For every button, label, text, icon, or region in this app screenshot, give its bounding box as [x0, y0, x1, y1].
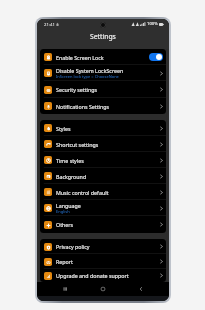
- staticText: Shortcut settings: [56, 141, 99, 148]
- staticText: Disable System LockScreen: [56, 67, 124, 74]
- staticText: English: [56, 209, 70, 214]
- staticText: 100%: [147, 21, 158, 27]
- button[interactable]: Styles: [40, 120, 166, 136]
- staticText: 21:41: [44, 21, 55, 27]
- button[interactable]: Security settings: [40, 81, 166, 98]
- staticText: Security settings: [56, 86, 98, 93]
- button[interactable]: Music control default: [40, 184, 166, 200]
- button[interactable]: Privacy policy: [40, 239, 166, 254]
- staticText: Language: [56, 202, 81, 209]
- button[interactable]: Recents: [55, 282, 75, 296]
- staticText: Privacy policy: [56, 243, 90, 250]
- staticText: Music control default: [56, 189, 109, 196]
- staticText: Upgrade and donate support: [56, 272, 129, 279]
- button[interactable]: Others: [40, 216, 166, 233]
- button[interactable]: Time styles: [40, 152, 166, 168]
- button[interactable]: Notifications Settings: [40, 98, 166, 114]
- staticText: Notifications Settings: [56, 103, 110, 110]
- staticText: Settings: [90, 32, 116, 41]
- button[interactable]: Home: [93, 282, 113, 296]
- staticText: Enable Screen Lock: [56, 54, 104, 61]
- staticText: Styles: [56, 125, 71, 132]
- button[interactable]: Background: [40, 168, 166, 184]
- button[interactable]: Shortcut settings: [40, 136, 166, 152]
- button[interactable]: Enable Screen Lock: [40, 49, 166, 65]
- button[interactable]: Report: [40, 254, 166, 269]
- button[interactable]: Language: [40, 200, 166, 216]
- button[interactable]: Back: [131, 282, 151, 296]
- staticText: InScreen lock type = ChooseNone: [56, 74, 119, 79]
- staticText: Others: [56, 221, 74, 228]
- staticText: Report: [56, 258, 73, 265]
- staticText: Time styles: [56, 157, 84, 164]
- staticText: Background: [56, 173, 87, 180]
- button[interactable]: Disable System LockScreen: [40, 65, 166, 81]
- button[interactable]: Upgrade and donate support: [40, 269, 166, 282]
